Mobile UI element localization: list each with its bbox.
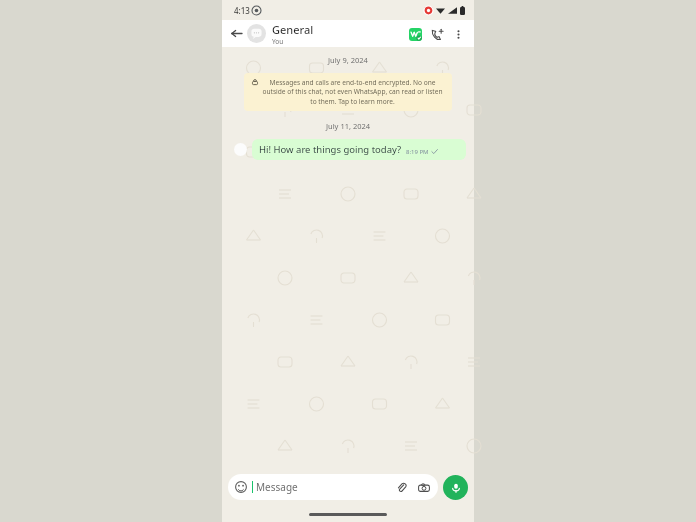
staticText: July 11, 2024 [326, 121, 371, 131]
button[interactable]: General [247, 20, 404, 47]
button[interactable]: Message [228, 474, 438, 500]
button[interactable]: More options [448, 24, 468, 44]
button[interactable]: Back [228, 25, 245, 42]
staticText: 8:19 PM [406, 148, 429, 156]
button[interactable]: Call [426, 23, 448, 45]
button[interactable]: Messages and calls are end-to-end encryp… [244, 73, 452, 111]
staticText: July 9, 2024 [328, 55, 368, 65]
staticText: Messages and calls are end-to-end encryp… [261, 78, 444, 106]
staticText: Hi! How are things going today? [259, 143, 402, 156]
staticText: You [272, 37, 284, 46]
staticText: Message [256, 480, 394, 494]
button[interactable]: Hi! How are things going today? [252, 139, 466, 160]
staticText: 4:13 [234, 5, 250, 16]
button[interactable]: Attach [394, 480, 409, 495]
button[interactable]: Camera [416, 480, 431, 495]
button[interactable]: Voice message [443, 475, 468, 500]
button[interactable]: WhatsApp Business [404, 23, 426, 45]
staticText: General [272, 22, 314, 37]
